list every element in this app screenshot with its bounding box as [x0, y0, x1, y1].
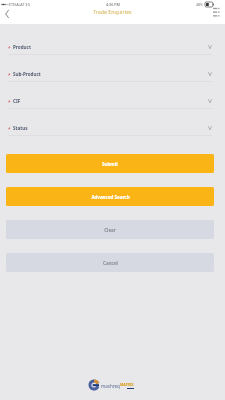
staticText: 48%: [196, 2, 203, 7]
button[interactable]: *: [0, 28, 225, 55]
staticText: Sub-Product: [13, 71, 41, 77]
button[interactable]: Menu: [213, 6, 224, 18]
staticText: Product: [13, 44, 31, 50]
staticText: Status: [13, 125, 28, 131]
staticText: Advanced Search: [91, 194, 130, 200]
button[interactable]: Advanced Search: [6, 187, 214, 206]
staticText: mashreq: [101, 383, 120, 389]
button[interactable]: Clear: [6, 220, 214, 239]
staticText: *: [8, 45, 11, 51]
button[interactable]: *: [0, 82, 225, 109]
staticText: ETISALAT 3G: [9, 2, 31, 7]
staticText: *: [8, 99, 11, 105]
staticText: *: [8, 126, 11, 132]
staticText: Trade Enquiries: [93, 8, 132, 15]
staticText: MATRIX: [120, 382, 134, 387]
staticText: Clear: [104, 227, 116, 233]
button[interactable]: *: [0, 109, 225, 136]
staticText: 4:36 PM: [106, 2, 120, 7]
staticText: *: [8, 72, 11, 78]
button[interactable]: Cancel: [6, 253, 214, 272]
staticText: Submit: [102, 161, 118, 167]
button[interactable]: *: [0, 55, 225, 82]
button[interactable]: Back: [0, 6, 16, 22]
staticText: CIF: [13, 98, 21, 104]
staticText: Cancel: [103, 260, 118, 266]
button[interactable]: Submit: [6, 154, 214, 173]
